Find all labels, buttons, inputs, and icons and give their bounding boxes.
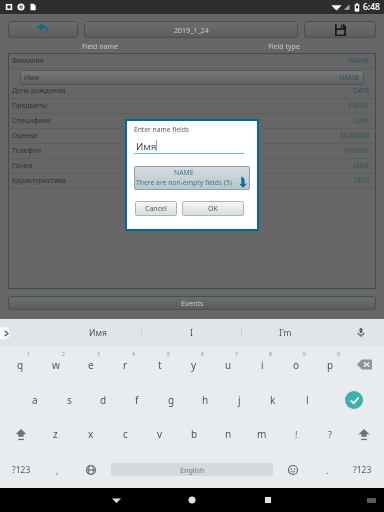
button[interactable]: l: [290, 383, 324, 417]
button[interactable]: Характеристика: [12, 174, 370, 188]
button[interactable]: k: [256, 383, 290, 417]
staticText: o: [293, 358, 300, 372]
staticText: NAME: [339, 73, 360, 83]
staticText: x: [88, 427, 94, 441]
button[interactable]: t: [143, 346, 177, 383]
staticText: b: [191, 427, 198, 441]
button[interactable]: ?: [313, 417, 347, 451]
button[interactable]: English: [108, 451, 276, 488]
staticText: v: [157, 427, 163, 441]
button[interactable]: d: [86, 383, 120, 417]
button[interactable]: r: [108, 346, 143, 383]
button[interactable]: x: [73, 417, 108, 451]
staticText: NAME: [349, 56, 370, 66]
button[interactable]: Backspace: [347, 346, 381, 383]
staticText: t: [158, 358, 162, 372]
button[interactable]: Back: [78, 488, 154, 512]
staticText: w: [52, 358, 60, 372]
button[interactable]: v: [143, 417, 177, 451]
button[interactable]: Home: [154, 488, 230, 512]
button[interactable]: Оценка: [12, 129, 370, 143]
staticText: 4: [132, 351, 135, 358]
staticText: Events: [181, 298, 204, 308]
staticText: 2019_1_24: [174, 25, 209, 35]
button[interactable]: f: [120, 383, 154, 417]
staticText: i: [261, 358, 264, 372]
button[interactable]: Enter: [324, 383, 384, 417]
staticText: 5: [167, 351, 170, 358]
button[interactable]: I'm: [241, 319, 329, 346]
button[interactable]: Undo: [8, 21, 78, 38]
button[interactable]: i: [245, 346, 279, 383]
button[interactable]: Voice input: [338, 319, 384, 346]
button[interactable]: I: [141, 319, 241, 346]
button[interactable]: День рождения: [12, 84, 370, 98]
button[interactable]: OK: [182, 201, 244, 216]
button[interactable]: h: [188, 383, 222, 417]
staticText: n: [225, 427, 232, 441]
button[interactable]: Shift: [347, 417, 381, 451]
button[interactable]: Почта: [12, 159, 370, 173]
staticText: p: [327, 358, 334, 372]
staticText: NAME: [174, 168, 194, 177]
button[interactable]: e: [73, 346, 108, 383]
staticText: ?123: [12, 464, 31, 476]
button[interactable]: Фамилия: [12, 54, 370, 68]
button[interactable]: ?123: [344, 451, 381, 488]
button[interactable]: Change language: [74, 451, 108, 488]
button[interactable]: Emoji: [276, 451, 310, 488]
staticText: Field name: [8, 42, 192, 52]
staticText: Предметы: [12, 101, 348, 111]
staticText: k: [270, 393, 276, 407]
button[interactable]: o: [279, 346, 313, 383]
staticText: MAIL: [353, 161, 370, 171]
button[interactable]: More suggestions: [0, 327, 10, 339]
staticText: TEXT: [354, 176, 370, 186]
staticText: 6:48: [363, 1, 380, 13]
staticText: 0: [337, 351, 340, 358]
staticText: s: [67, 393, 72, 407]
staticText: ?123: [353, 464, 372, 476]
button[interactable]: u: [211, 346, 245, 383]
button[interactable]: s: [52, 383, 86, 417]
button[interactable]: b: [177, 417, 211, 451]
staticText: r: [123, 358, 128, 372]
button[interactable]: NAME: [134, 166, 250, 190]
staticText: Имя: [24, 73, 339, 83]
button[interactable]: z: [38, 417, 73, 451]
staticText: !: [295, 428, 298, 440]
staticText: d: [100, 393, 107, 407]
button[interactable]: Cancel: [135, 201, 177, 216]
button[interactable]: Имя: [54, 319, 141, 346]
button[interactable]: Shift: [3, 417, 38, 451]
staticText: I: [190, 327, 193, 339]
button[interactable]: q: [3, 346, 38, 383]
button[interactable]: Имя: [20, 70, 364, 85]
button[interactable]: ,: [40, 451, 74, 488]
button[interactable]: Телефон: [12, 144, 370, 158]
button[interactable]: Recents: [230, 488, 306, 512]
staticText: q: [17, 358, 24, 372]
button[interactable]: Save: [304, 21, 376, 38]
button[interactable]: Events: [8, 296, 376, 310]
staticText: English: [180, 465, 205, 475]
button[interactable]: w: [38, 346, 73, 383]
button[interactable]: p: [313, 346, 347, 383]
button[interactable]: n: [211, 417, 245, 451]
staticText: ?: [328, 428, 332, 440]
button[interactable]: a: [18, 383, 52, 417]
button[interactable]: !: [279, 417, 313, 451]
staticText: LINE: [354, 116, 370, 126]
button[interactable]: m: [245, 417, 279, 451]
button[interactable]: y: [177, 346, 211, 383]
button[interactable]: j: [222, 383, 256, 417]
button[interactable]: Предметы: [12, 99, 370, 113]
button[interactable]: g: [154, 383, 188, 417]
button[interactable]: c: [108, 417, 143, 451]
button[interactable]: Keyboard: [367, 497, 376, 504]
button[interactable]: Специфика: [12, 114, 370, 128]
button[interactable]: 2019_1_24: [84, 21, 298, 38]
staticText: m: [257, 427, 267, 441]
button[interactable]: ?123: [3, 451, 40, 488]
